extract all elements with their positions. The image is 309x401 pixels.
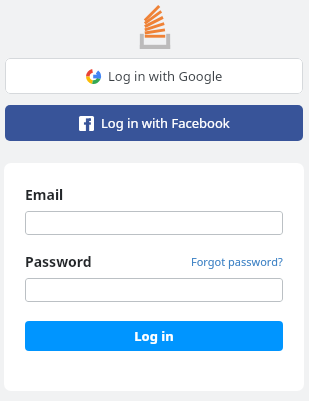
staticText: Log in — [134, 327, 174, 345]
other: Google — [86, 69, 101, 84]
staticText: Email — [25, 185, 64, 204]
button[interactable] — [25, 278, 283, 302]
staticText: Log in with Google — [108, 67, 223, 85]
button[interactable]: Forgot password? — [191, 254, 283, 269]
staticText: Log in with Facebook — [101, 114, 230, 132]
button[interactable]: Log in — [25, 321, 283, 351]
button[interactable] — [25, 211, 283, 235]
button[interactable]: Google — [5, 58, 303, 94]
button[interactable]: Facebook — [5, 105, 303, 141]
staticText: Forgot password? — [191, 254, 283, 269]
staticText: Password — [25, 252, 92, 271]
other: Stack Overflow — [138, 9, 172, 49]
other: Facebook — [79, 116, 94, 131]
